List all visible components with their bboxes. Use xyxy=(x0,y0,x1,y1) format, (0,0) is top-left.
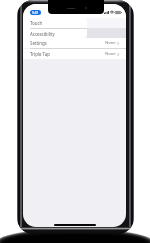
staticText: 9:41 xyxy=(32,11,39,15)
staticText: Triple Tap xyxy=(30,51,50,57)
button[interactable]: Settings xyxy=(23,38,126,48)
button[interactable]: Accessibility xyxy=(23,29,87,38)
staticText: None xyxy=(105,40,116,46)
staticText: None xyxy=(105,51,116,57)
staticText: Touch xyxy=(30,20,43,26)
button[interactable]: Touch xyxy=(23,18,87,28)
staticText: Settings xyxy=(30,40,47,46)
staticText: Accessibility xyxy=(30,31,55,37)
button[interactable]: Triple Tap xyxy=(23,49,126,59)
